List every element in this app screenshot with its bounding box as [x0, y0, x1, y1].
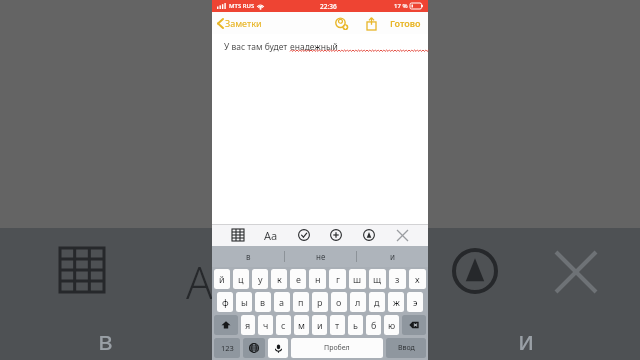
staticText: Ввод — [398, 343, 415, 353]
staticText: ш — [353, 273, 362, 285]
button[interactable]: п — [293, 292, 309, 312]
staticText: Заметки — [225, 17, 262, 29]
button[interactable]: Table — [228, 225, 248, 245]
button[interactable]: Заметки — [216, 14, 264, 32]
button[interactable]: Share — [361, 13, 381, 33]
staticText: я — [245, 319, 251, 331]
staticText: с — [281, 319, 286, 331]
button[interactable]: Markup — [359, 225, 379, 245]
staticText: не — [316, 251, 326, 262]
button[interactable]: к — [271, 269, 287, 289]
button[interactable]: Add — [326, 225, 346, 245]
staticText: щ — [373, 273, 382, 285]
button[interactable]: ж — [388, 292, 404, 312]
staticText: р — [317, 296, 323, 308]
button[interactable]: ч — [258, 315, 273, 335]
button[interactable]: Close keyboard — [392, 225, 412, 245]
button[interactable]: й — [214, 269, 230, 289]
staticText: и — [317, 319, 323, 331]
staticText: в — [260, 296, 266, 308]
staticText: в — [98, 322, 113, 357]
staticText: б — [371, 319, 377, 331]
staticText: в — [246, 251, 251, 262]
staticText: 22:36 — [320, 2, 337, 11]
button[interactable]: а — [274, 292, 290, 312]
staticText: ь — [353, 319, 358, 331]
staticText: г — [336, 273, 340, 285]
button[interactable]: э — [407, 292, 423, 312]
staticText: ц — [238, 273, 244, 285]
staticText: ы — [241, 296, 248, 308]
staticText: Aa — [264, 228, 278, 243]
button[interactable]: ш — [349, 269, 366, 289]
button[interactable]: е — [290, 269, 306, 289]
staticText: ж — [393, 296, 400, 308]
button[interactable]: щ — [369, 269, 386, 289]
button[interactable]: я — [241, 315, 255, 335]
staticText: ю — [388, 319, 396, 331]
button[interactable]: Change keyboard — [243, 338, 265, 358]
staticText: Готово — [390, 17, 421, 29]
staticText: й — [219, 273, 225, 285]
staticText: п — [298, 296, 304, 308]
staticText: У вас там будет — [224, 41, 290, 53]
button[interactable]: ы — [236, 292, 252, 312]
staticText: э — [413, 296, 418, 308]
button[interactable]: Checklist — [294, 225, 314, 245]
staticText: е — [296, 273, 301, 285]
button[interactable]: ю — [384, 315, 399, 335]
staticText: Пробел — [324, 343, 350, 353]
button[interactable]: б — [366, 315, 381, 335]
staticText: MTS RUS — [229, 2, 255, 10]
button[interactable]: т — [330, 315, 345, 335]
staticText: н — [315, 273, 321, 285]
button[interactable]: в — [212, 246, 284, 267]
staticText: и — [518, 322, 535, 357]
button[interactable]: Dictation — [268, 338, 288, 358]
staticText: м — [298, 319, 305, 331]
button[interactable]: н — [309, 269, 326, 289]
button[interactable]: д — [369, 292, 385, 312]
button[interactable]: не — [285, 246, 356, 267]
staticText: д — [374, 296, 380, 308]
button[interactable]: в — [255, 292, 271, 312]
button[interactable]: Aa — [261, 225, 281, 245]
staticText: 17 % — [394, 2, 408, 10]
staticText: з — [395, 273, 400, 285]
staticText: а — [279, 296, 285, 308]
button[interactable]: 123 — [214, 338, 240, 358]
staticText: о — [336, 296, 342, 308]
button[interactable]: у — [252, 269, 268, 289]
button[interactable]: Пробел — [291, 338, 383, 358]
button[interactable]: з — [389, 269, 406, 289]
button[interactable]: Ввод — [386, 338, 426, 358]
button[interactable]: м — [294, 315, 309, 335]
button[interactable]: ф — [217, 292, 233, 312]
button[interactable]: г — [329, 269, 346, 289]
button[interactable]: Add people — [331, 13, 351, 33]
button[interactable]: ц — [233, 269, 249, 289]
staticText: у — [258, 273, 263, 285]
staticText: Aa — [186, 252, 237, 312]
button[interactable]: Backspace — [402, 315, 426, 335]
button[interactable]: ь — [348, 315, 363, 335]
staticText: 123 — [221, 343, 234, 353]
staticText: т — [335, 319, 340, 331]
button[interactable]: и — [357, 246, 428, 267]
staticText: и — [390, 251, 395, 262]
button[interactable]: и — [312, 315, 327, 335]
staticText: енадежный — [290, 41, 338, 53]
button[interactable]: У вас там будет — [212, 34, 428, 224]
button[interactable]: х — [409, 269, 426, 289]
button[interactable]: Shift — [214, 315, 238, 335]
button[interactable]: р — [312, 292, 328, 312]
button[interactable]: о — [331, 292, 347, 312]
staticText: ф — [222, 296, 229, 308]
button[interactable]: Готово — [387, 14, 424, 32]
button[interactable]: с — [276, 315, 291, 335]
staticText: л — [355, 296, 361, 308]
button[interactable]: л — [350, 292, 366, 312]
staticText: х — [415, 273, 420, 285]
staticText: ч — [263, 319, 269, 331]
staticText: к — [277, 273, 282, 285]
